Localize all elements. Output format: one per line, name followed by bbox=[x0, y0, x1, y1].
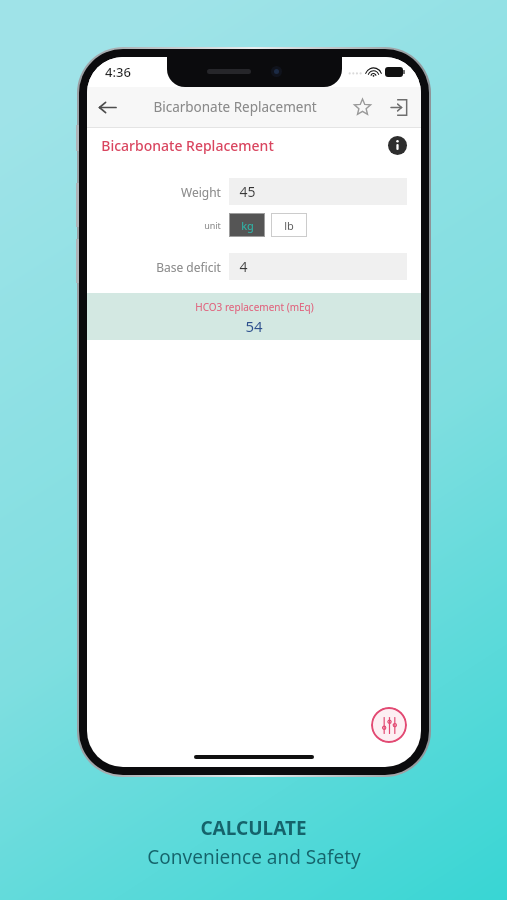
button[interactable]: 4 bbox=[229, 253, 407, 280]
staticText: lb bbox=[284, 218, 294, 233]
staticText: 54 bbox=[245, 316, 263, 336]
staticText: unit bbox=[204, 219, 221, 231]
button[interactable]: Favorite bbox=[343, 88, 381, 126]
staticText: Bicarbonate Replacement bbox=[153, 98, 317, 116]
button[interactable]: Back bbox=[87, 87, 127, 127]
staticText: 4:36 bbox=[105, 63, 131, 81]
staticText: 45 bbox=[239, 182, 256, 201]
button[interactable]: 45 bbox=[229, 178, 407, 205]
staticText: HCO3 replacement (mEq) bbox=[195, 300, 314, 314]
staticText: kg bbox=[241, 218, 254, 233]
button[interactable]: Login bbox=[381, 87, 415, 127]
staticText: Convenience and Safety bbox=[147, 844, 361, 870]
staticText: CALCULATE bbox=[200, 815, 307, 841]
button[interactable]: kg bbox=[229, 213, 265, 237]
staticText: Weight bbox=[181, 184, 221, 200]
staticText: Base deficit bbox=[156, 259, 221, 275]
staticText: 4 bbox=[239, 257, 248, 276]
button[interactable]: Information bbox=[385, 133, 409, 157]
button[interactable]: lb bbox=[271, 213, 307, 237]
button[interactable]: Settings bbox=[371, 707, 407, 743]
staticText: Bicarbonate Replacement bbox=[101, 136, 274, 155]
